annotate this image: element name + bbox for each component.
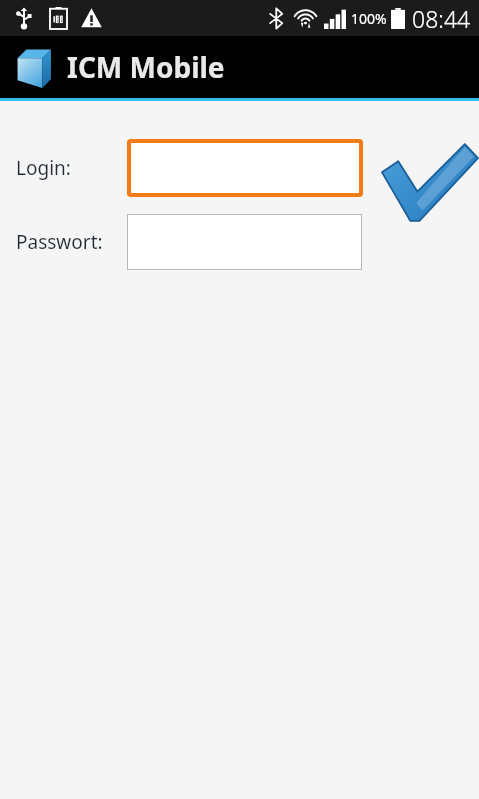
staticText: ICM Mobile: [67, 48, 225, 86]
staticText: 100%: [351, 9, 387, 28]
staticText: 08:44: [412, 3, 471, 34]
staticText: Login:: [16, 155, 71, 181]
button[interactable]: [127, 139, 363, 197]
button[interactable]: [127, 214, 362, 270]
button[interactable]: Confirm: [378, 136, 479, 237]
staticText: Passwort:: [16, 229, 103, 255]
